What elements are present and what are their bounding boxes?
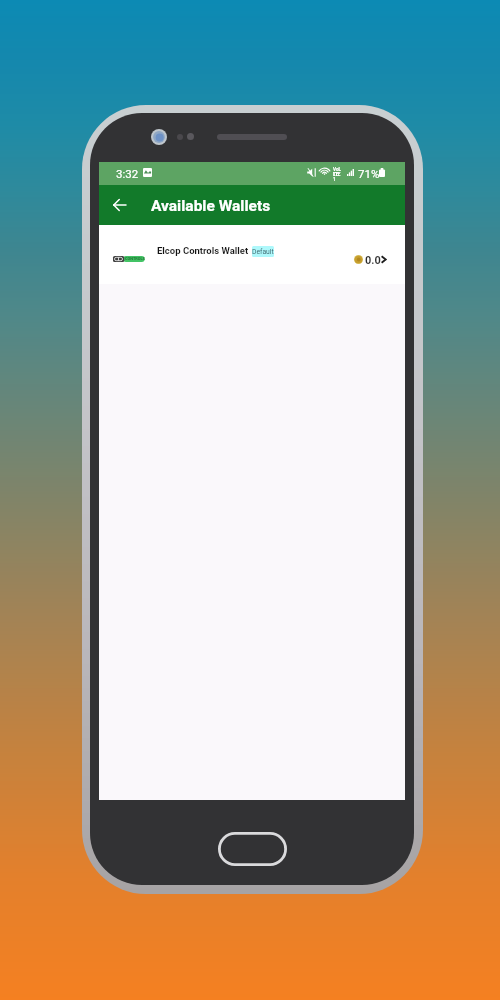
staticText: VoLTE [333, 167, 343, 177]
staticText: Available Wallets [151, 197, 271, 215]
staticText: Elcop Controls Wallet [157, 245, 249, 256]
staticText: LTE1 [333, 172, 343, 182]
button[interactable]: Home [218, 832, 287, 866]
staticText: Default [252, 248, 274, 256]
staticText: 3:32 [116, 167, 139, 180]
button[interactable]: Back [104, 190, 134, 220]
button[interactable]: CONTROLS [99, 225, 405, 284]
staticText: 71% [358, 167, 380, 180]
staticText: CONTROLS [125, 256, 146, 261]
staticText: 0.0 [365, 254, 381, 267]
